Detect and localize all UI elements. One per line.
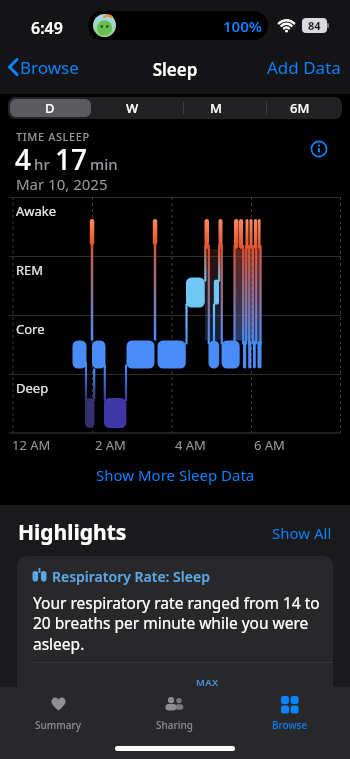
button[interactable]: W — [91, 97, 174, 119]
button[interactable]: Browse — [6, 52, 79, 82]
staticText: Show All — [272, 523, 332, 543]
button[interactable]: Show More Sleep Data — [0, 462, 350, 488]
staticText: Browse — [20, 56, 79, 79]
staticText: Summary — [35, 718, 81, 732]
staticText: M — [210, 99, 222, 117]
staticText: min — [90, 154, 118, 174]
staticText: 4 AM — [175, 436, 206, 454]
staticText: MAX — [196, 676, 219, 689]
staticText: 12 AM — [12, 436, 51, 454]
button[interactable]: 6M — [258, 97, 342, 119]
button[interactable]: Sharing — [116, 689, 232, 737]
staticText: 6M — [290, 99, 310, 117]
staticText: 17 — [55, 140, 88, 178]
staticText: 100% — [223, 16, 262, 36]
staticText: W — [126, 99, 139, 117]
staticText: Deep — [16, 379, 49, 397]
button[interactable]: D — [8, 97, 91, 119]
button[interactable]: Browse — [232, 689, 348, 737]
staticText: TIME ASLEEP — [16, 129, 90, 144]
staticText: 6:49 — [31, 17, 63, 39]
button[interactable]: Add Data — [257, 52, 341, 82]
button[interactable]: M — [174, 97, 258, 119]
staticText: Awake — [16, 202, 57, 220]
staticText: Respiratory Rate: Sleep — [52, 567, 210, 586]
staticText: Mar 10, 2025 — [16, 174, 108, 194]
staticText: 84 — [308, 18, 321, 33]
staticText: 4 — [15, 140, 32, 178]
button[interactable]: Respiratory Rate: Sleep — [17, 556, 333, 700]
staticText: 6 AM — [254, 436, 285, 454]
staticText: Highlights — [18, 518, 127, 547]
staticText: Your respiratory rate ranged from 14 to … — [33, 592, 320, 655]
staticText: REM — [16, 261, 44, 279]
staticText: 2 AM — [95, 436, 126, 454]
staticText: D — [45, 99, 55, 117]
staticText: Sharing — [156, 718, 193, 732]
button[interactable]: Summary — [0, 689, 116, 737]
staticText: Browse — [272, 718, 308, 732]
staticText: Core — [16, 320, 45, 338]
staticText: Sleep — [0, 58, 350, 81]
staticText: hr — [34, 154, 50, 174]
staticText: Show More Sleep Data — [96, 465, 255, 485]
button[interactable] — [310, 140, 328, 158]
button[interactable]: Show All — [262, 522, 332, 544]
staticText: Add Data — [267, 56, 341, 79]
